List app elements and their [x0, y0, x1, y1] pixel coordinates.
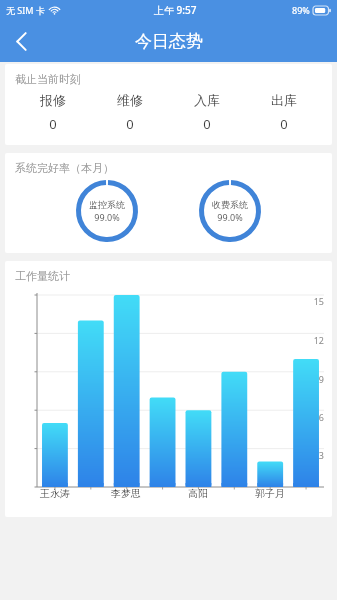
staticText: 99.0%	[217, 211, 243, 223]
staticText: 9	[318, 373, 324, 385]
staticText: 3	[318, 449, 324, 461]
staticText: 今日态势	[135, 31, 203, 52]
button[interactable]: Back	[0, 20, 42, 62]
staticText: 无 SIM 卡	[6, 4, 45, 16]
button[interactable]: 报修	[15, 92, 91, 133]
staticText: 0	[203, 115, 211, 133]
staticText: 6	[318, 411, 324, 423]
staticText: 出库	[271, 92, 297, 108]
staticText: 维修	[117, 92, 143, 108]
staticText: 0	[49, 115, 57, 133]
staticText: 0	[280, 115, 288, 133]
button[interactable]: 维修	[91, 92, 168, 133]
staticText: 89%	[292, 4, 310, 16]
staticText: 系统完好率（本月）	[15, 161, 114, 175]
staticText: 0	[126, 115, 134, 133]
staticText: 郭子月	[255, 487, 285, 500]
staticText: 报修	[40, 92, 66, 108]
staticText: 高阳	[188, 487, 208, 500]
staticText: 收费系统	[212, 199, 248, 210]
staticText: 截止当前时刻	[15, 72, 81, 86]
button[interactable]: 收费系统	[198, 179, 262, 243]
staticText: 监控系统	[89, 199, 125, 210]
staticText: 12	[313, 334, 324, 346]
button[interactable]: 出库	[245, 92, 322, 133]
staticText: 上午 9:57	[154, 3, 197, 17]
staticText: 王永涛	[40, 487, 70, 500]
staticText: 15	[313, 295, 324, 307]
staticText: 入库	[194, 92, 220, 108]
button[interactable]: 监控系统	[75, 179, 139, 243]
button[interactable]: 入库	[168, 92, 245, 133]
staticText: 99.0%	[94, 211, 120, 223]
staticText: 李梦思	[111, 487, 141, 500]
staticText: 工作量统计	[15, 269, 70, 283]
